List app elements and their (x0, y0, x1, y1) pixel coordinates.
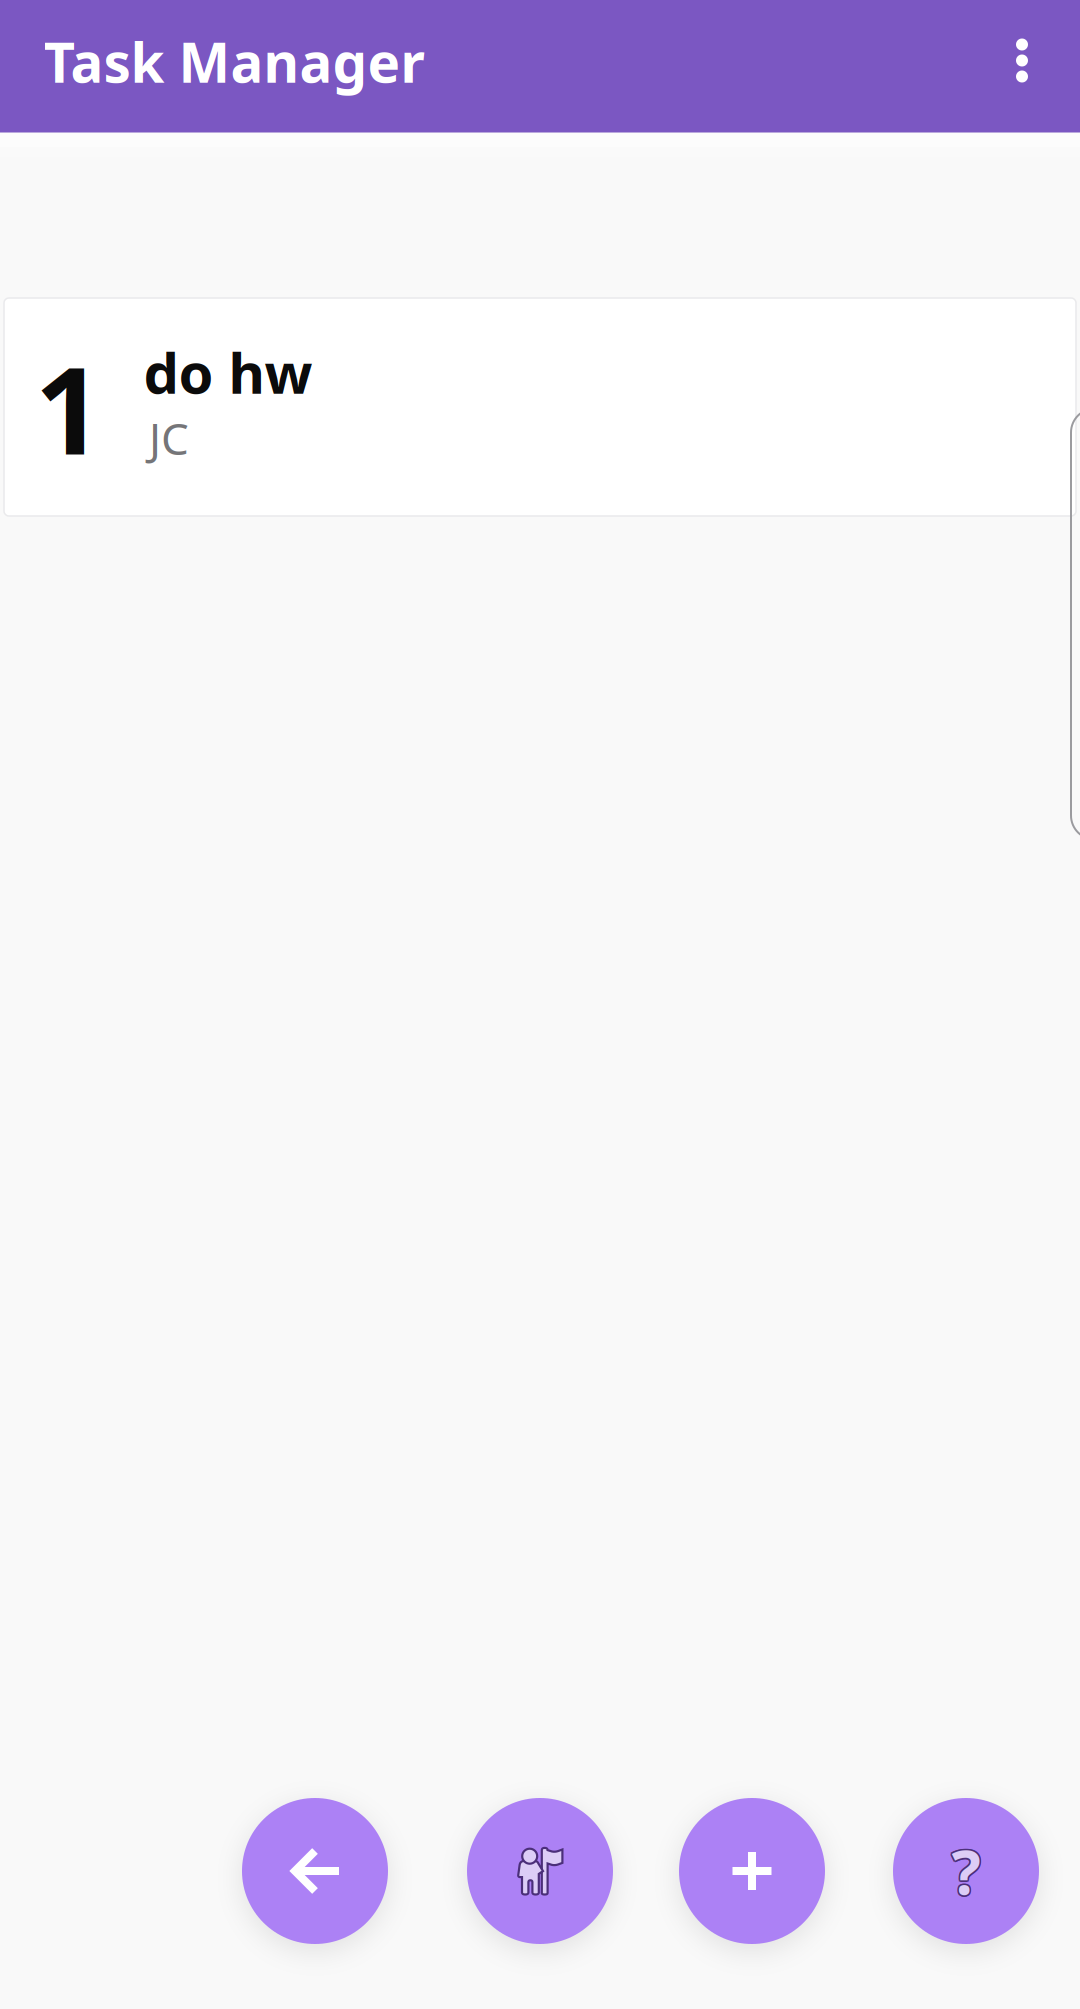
button[interactable]: Back (242, 1798, 388, 1944)
button[interactable]: 1 (4, 298, 1076, 516)
staticText: Task Manager (43, 25, 424, 98)
staticText: ? (953, 1830, 982, 1912)
staticText: ? (953, 1831, 982, 1913)
staticText: ? (950, 1829, 979, 1910)
button[interactable]: Add task (679, 1798, 825, 1944)
button[interactable]: Help (893, 1798, 1039, 1944)
staticText: ? (950, 1830, 979, 1912)
staticText: do hw (143, 335, 312, 409)
button[interactable]: Challenges (467, 1798, 613, 1944)
staticText: JC (149, 409, 189, 467)
staticText: ? (950, 1831, 979, 1913)
staticText: ? (951, 1830, 980, 1912)
staticText: ? (951, 1829, 980, 1910)
staticText: ? (953, 1829, 982, 1910)
staticText: 1 (34, 328, 103, 488)
button[interactable]: More options (968, 0, 1076, 127)
staticText: ? (951, 1832, 980, 1913)
